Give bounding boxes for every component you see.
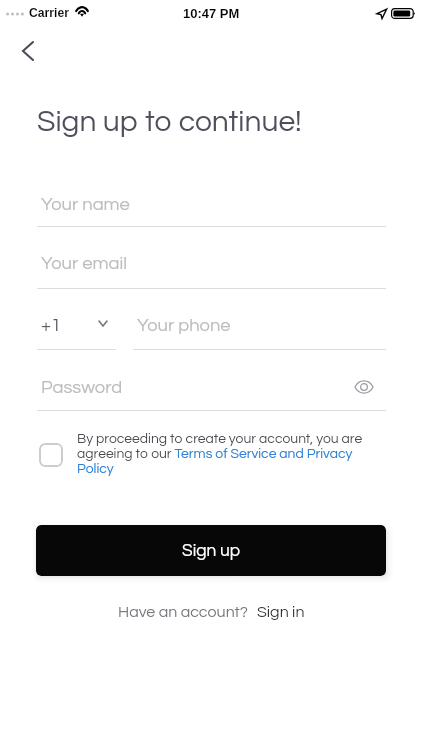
staticText: Your email <box>41 254 127 273</box>
button[interactable]: Your name <box>37 195 386 225</box>
button[interactable]: Your email <box>37 254 386 284</box>
staticText: By proceeding to create your account, yo… <box>77 432 369 476</box>
button[interactable]: Your phone <box>133 316 386 346</box>
staticText: Have an account? <box>118 604 248 620</box>
staticText: Your phone <box>137 316 231 335</box>
staticText: Sign up <box>182 542 241 560</box>
button[interactable]: Back <box>8 31 48 71</box>
staticText: Carrier <box>29 6 69 20</box>
staticText: 10:47 PM <box>183 6 240 21</box>
staticText: Sign in <box>257 604 305 620</box>
button[interactable]: Sign in <box>257 604 305 620</box>
button[interactable]: Password <box>37 378 386 410</box>
staticText: Your name <box>41 195 130 214</box>
button[interactable]: Show password <box>351 374 377 400</box>
staticText: +1 <box>41 316 62 335</box>
button[interactable]: +1 <box>37 316 116 352</box>
staticText: Sign up to continue! <box>37 106 302 137</box>
staticText: Password <box>41 378 123 397</box>
button[interactable]: Sign up <box>36 525 386 576</box>
button[interactable]: Accept terms <box>39 443 63 467</box>
